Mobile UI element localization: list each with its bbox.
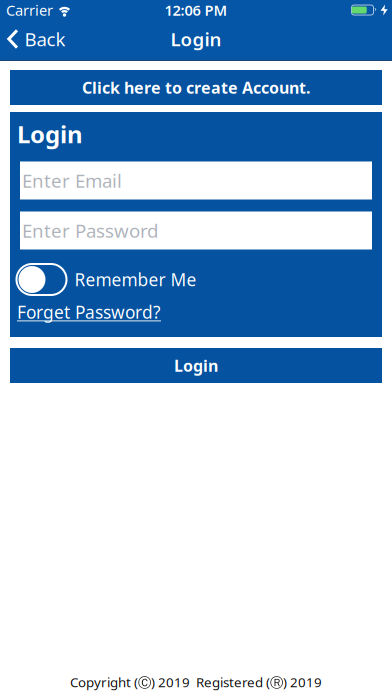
staticText: Forget Password? [17,300,161,323]
staticText: Remember Me [74,268,196,291]
button[interactable]: Back [0,29,65,53]
staticText: Carrier [6,0,53,20]
staticText: Enter Email [22,168,122,193]
staticText: 12:06 PM [164,0,227,20]
button[interactable]: Enter Password [20,211,372,249]
button[interactable]: Click here to create Account. [10,70,382,105]
staticText: Login [170,27,221,51]
button[interactable]: Enter Email [20,161,372,199]
button[interactable]: Login [10,348,382,383]
button[interactable]: Forget Password? [20,300,164,323]
staticText: Back [24,27,65,51]
staticText: Login [174,355,218,376]
staticText: Copyright (Ⓒ) 2019 Registered (Ⓡ) 2019 [70,673,322,691]
staticText: Enter Password [22,218,158,243]
button[interactable]: Remember Me [20,264,200,295]
staticText: Login [17,118,83,150]
staticText: Click here to create Account. [82,77,310,98]
